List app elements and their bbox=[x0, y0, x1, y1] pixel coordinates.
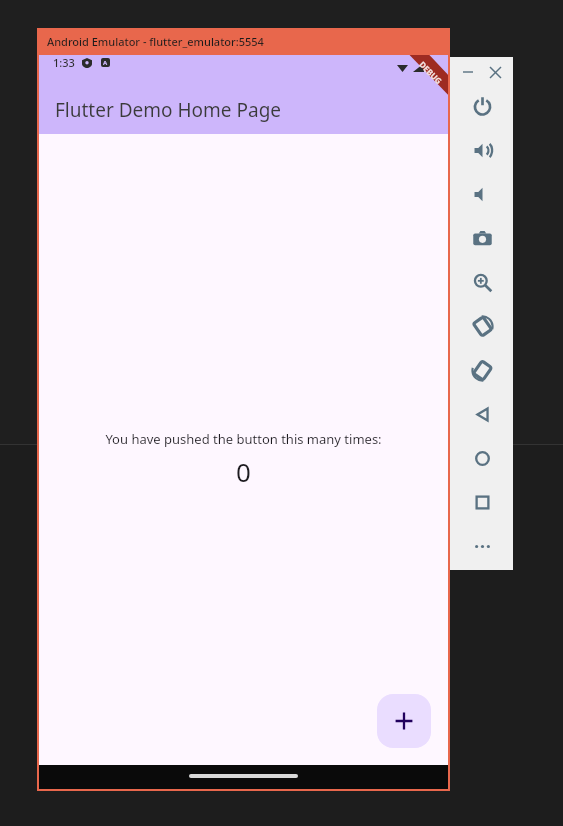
button[interactable]: Overview bbox=[465, 485, 499, 519]
staticText: A bbox=[103, 59, 108, 67]
staticText: You have pushed the button this many tim… bbox=[105, 430, 382, 448]
staticText: Flutter Demo Home Page bbox=[55, 97, 282, 123]
button[interactable]: Rotate right bbox=[465, 353, 499, 387]
button[interactable]: Rotate left bbox=[465, 309, 499, 343]
button[interactable]: Close bbox=[485, 62, 505, 82]
staticText: Android Emulator - flutter_emulator:5554 bbox=[47, 34, 264, 49]
staticText: DEBUG bbox=[417, 59, 445, 86]
button[interactable]: Home bbox=[465, 441, 499, 475]
button[interactable]: Zoom bbox=[465, 265, 499, 299]
button[interactable]: Screenshot bbox=[465, 221, 499, 255]
staticText: 1:33 bbox=[53, 55, 75, 70]
button[interactable]: Volume up bbox=[465, 133, 499, 167]
button[interactable]: More bbox=[465, 529, 499, 563]
button[interactable]: Volume down bbox=[465, 177, 499, 211]
button[interactable]: Minimize bbox=[458, 62, 478, 82]
button[interactable]: Power bbox=[465, 89, 499, 123]
staticText: 0 bbox=[236, 454, 251, 489]
button[interactable]: Increment bbox=[377, 694, 431, 748]
button[interactable]: Back bbox=[465, 397, 499, 431]
